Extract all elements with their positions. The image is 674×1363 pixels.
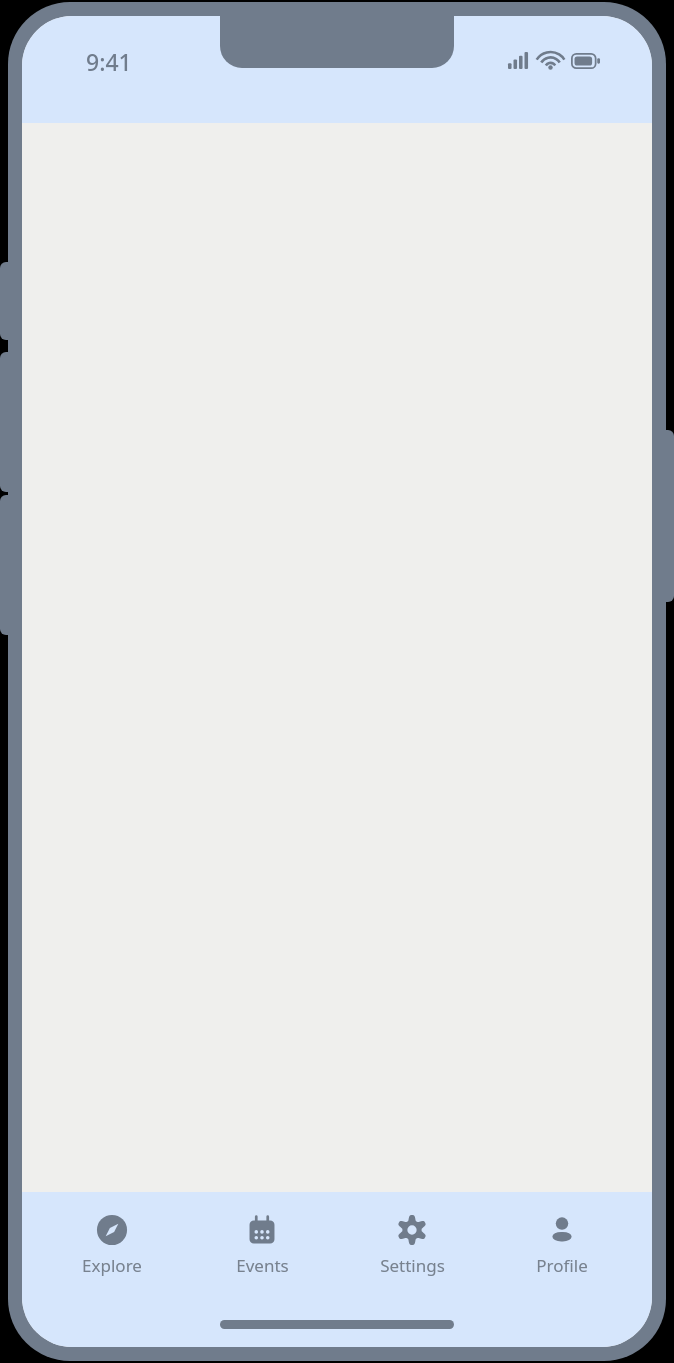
- staticText: 9:41: [86, 46, 132, 77]
- other: Profile: [546, 1214, 578, 1246]
- button[interactable]: Explore: [52, 1210, 172, 1281]
- staticText: Events: [236, 1254, 289, 1277]
- other: Explore: [96, 1214, 128, 1246]
- button[interactable]: Settings: [352, 1210, 472, 1281]
- other: Settings: [396, 1214, 428, 1246]
- other: Events: [246, 1214, 278, 1246]
- button[interactable]: Profile: [502, 1210, 622, 1281]
- button[interactable]: Events: [202, 1210, 322, 1281]
- staticText: Profile: [536, 1254, 588, 1277]
- staticText: Settings: [380, 1254, 445, 1277]
- staticText: Explore: [82, 1254, 142, 1277]
